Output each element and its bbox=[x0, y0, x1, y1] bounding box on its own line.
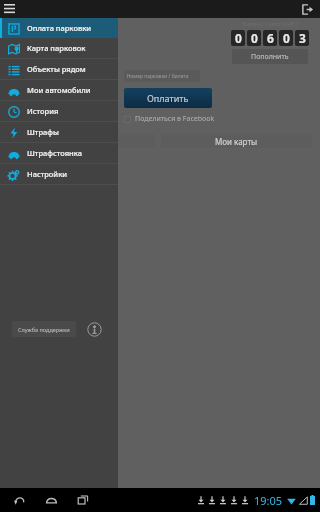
button[interactable]: История bbox=[0, 101, 118, 121]
button[interactable]: Мои карты bbox=[161, 134, 312, 148]
staticText: Служба поддержки bbox=[18, 326, 70, 333]
button[interactable]: Служба поддержки bbox=[12, 321, 76, 337]
staticText: История bbox=[27, 106, 59, 116]
staticText: 0 bbox=[235, 30, 242, 46]
button[interactable]: Поделиться в Facebook bbox=[124, 114, 215, 124]
button[interactable] bbox=[100, 134, 155, 148]
button[interactable]: Номер парковки / билета bbox=[124, 70, 200, 82]
staticText: Баланс счета (руб.) bbox=[243, 20, 298, 28]
button[interactable]: Штрафы bbox=[0, 122, 118, 142]
button[interactable]: Back bbox=[8, 489, 30, 511]
staticText: Оплатить bbox=[147, 92, 189, 104]
button[interactable]: Карта парковок bbox=[0, 38, 118, 58]
staticText: Поделиться в Facebook bbox=[135, 114, 215, 124]
button[interactable]: Штрафстоянка bbox=[0, 143, 118, 163]
button[interactable]: Log out bbox=[298, 0, 316, 18]
button[interactable]: Menu bbox=[0, 0, 18, 18]
button[interactable]: Recent apps bbox=[72, 489, 94, 511]
button[interactable]: Оплата парковки bbox=[0, 18, 118, 38]
staticText: 6 bbox=[267, 30, 274, 46]
staticText: Оплата парковки bbox=[27, 23, 92, 33]
staticText: 0 bbox=[251, 30, 258, 46]
button[interactable]: Home bbox=[40, 489, 62, 511]
button[interactable]: Info bbox=[85, 320, 103, 338]
button[interactable]: Настройки bbox=[0, 164, 118, 184]
staticText: Штрафстоянка bbox=[27, 148, 83, 158]
staticText: Пополнить bbox=[251, 52, 289, 62]
staticText: 0 bbox=[283, 30, 290, 46]
button[interactable]: Пополнить bbox=[232, 49, 308, 64]
staticText: 3 bbox=[299, 30, 306, 46]
button[interactable]: Оплатить bbox=[124, 88, 212, 108]
staticText: 19:05 bbox=[254, 493, 283, 508]
staticText: Мои карты bbox=[215, 136, 258, 147]
staticText: Объекты рядом bbox=[27, 64, 86, 74]
button[interactable]: Мои автомобили bbox=[0, 80, 118, 100]
staticText: Мои автомобили bbox=[27, 85, 91, 95]
staticText: Штрафы bbox=[27, 127, 59, 137]
staticText: Карта парковок bbox=[27, 43, 86, 53]
staticText: Номер парковки / билета bbox=[124, 73, 189, 80]
staticText: Настройки bbox=[27, 169, 68, 179]
button[interactable]: Объекты рядом bbox=[0, 59, 118, 79]
